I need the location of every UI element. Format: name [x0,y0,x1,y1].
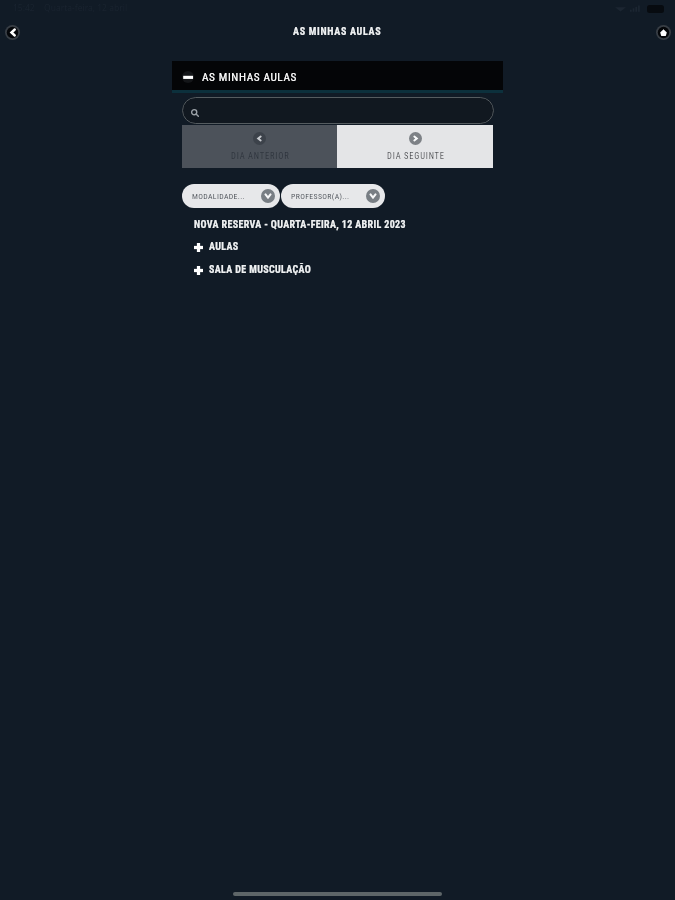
staticText: DIA SEGUINTE [387,151,445,161]
button[interactable]: DIA ANTERIOR [182,125,337,168]
staticText: AS MINHAS AULAS [202,71,298,84]
button[interactable]: Home [653,22,673,42]
button[interactable]: MODALIDADE... [182,184,280,208]
button[interactable]: DIA SEGUINTE [337,125,493,168]
button[interactable]: SALA DE MUSCULAÇÃO [194,264,312,276]
staticText: AULAS [209,241,239,253]
staticText: NOVA RESERVA - QUARTA-FEIRA, 12 ABRIL 20… [194,219,406,231]
button[interactable]: AS MINHAS AULAS [172,61,503,90]
staticText: DIA ANTERIOR [231,151,290,161]
button[interactable]: Voltar [2,22,22,42]
button[interactable]: Pesquisar [182,97,494,124]
staticText: SALA DE MUSCULAÇÃO [209,264,312,276]
button[interactable]: AULAS [194,241,239,253]
staticText: AS MINHAS AULAS [293,26,382,38]
staticText: MODALIDADE... [192,192,261,201]
button[interactable]: PROFESSOR(A)... [281,184,385,208]
staticText: PROFESSOR(A)... [291,192,366,201]
